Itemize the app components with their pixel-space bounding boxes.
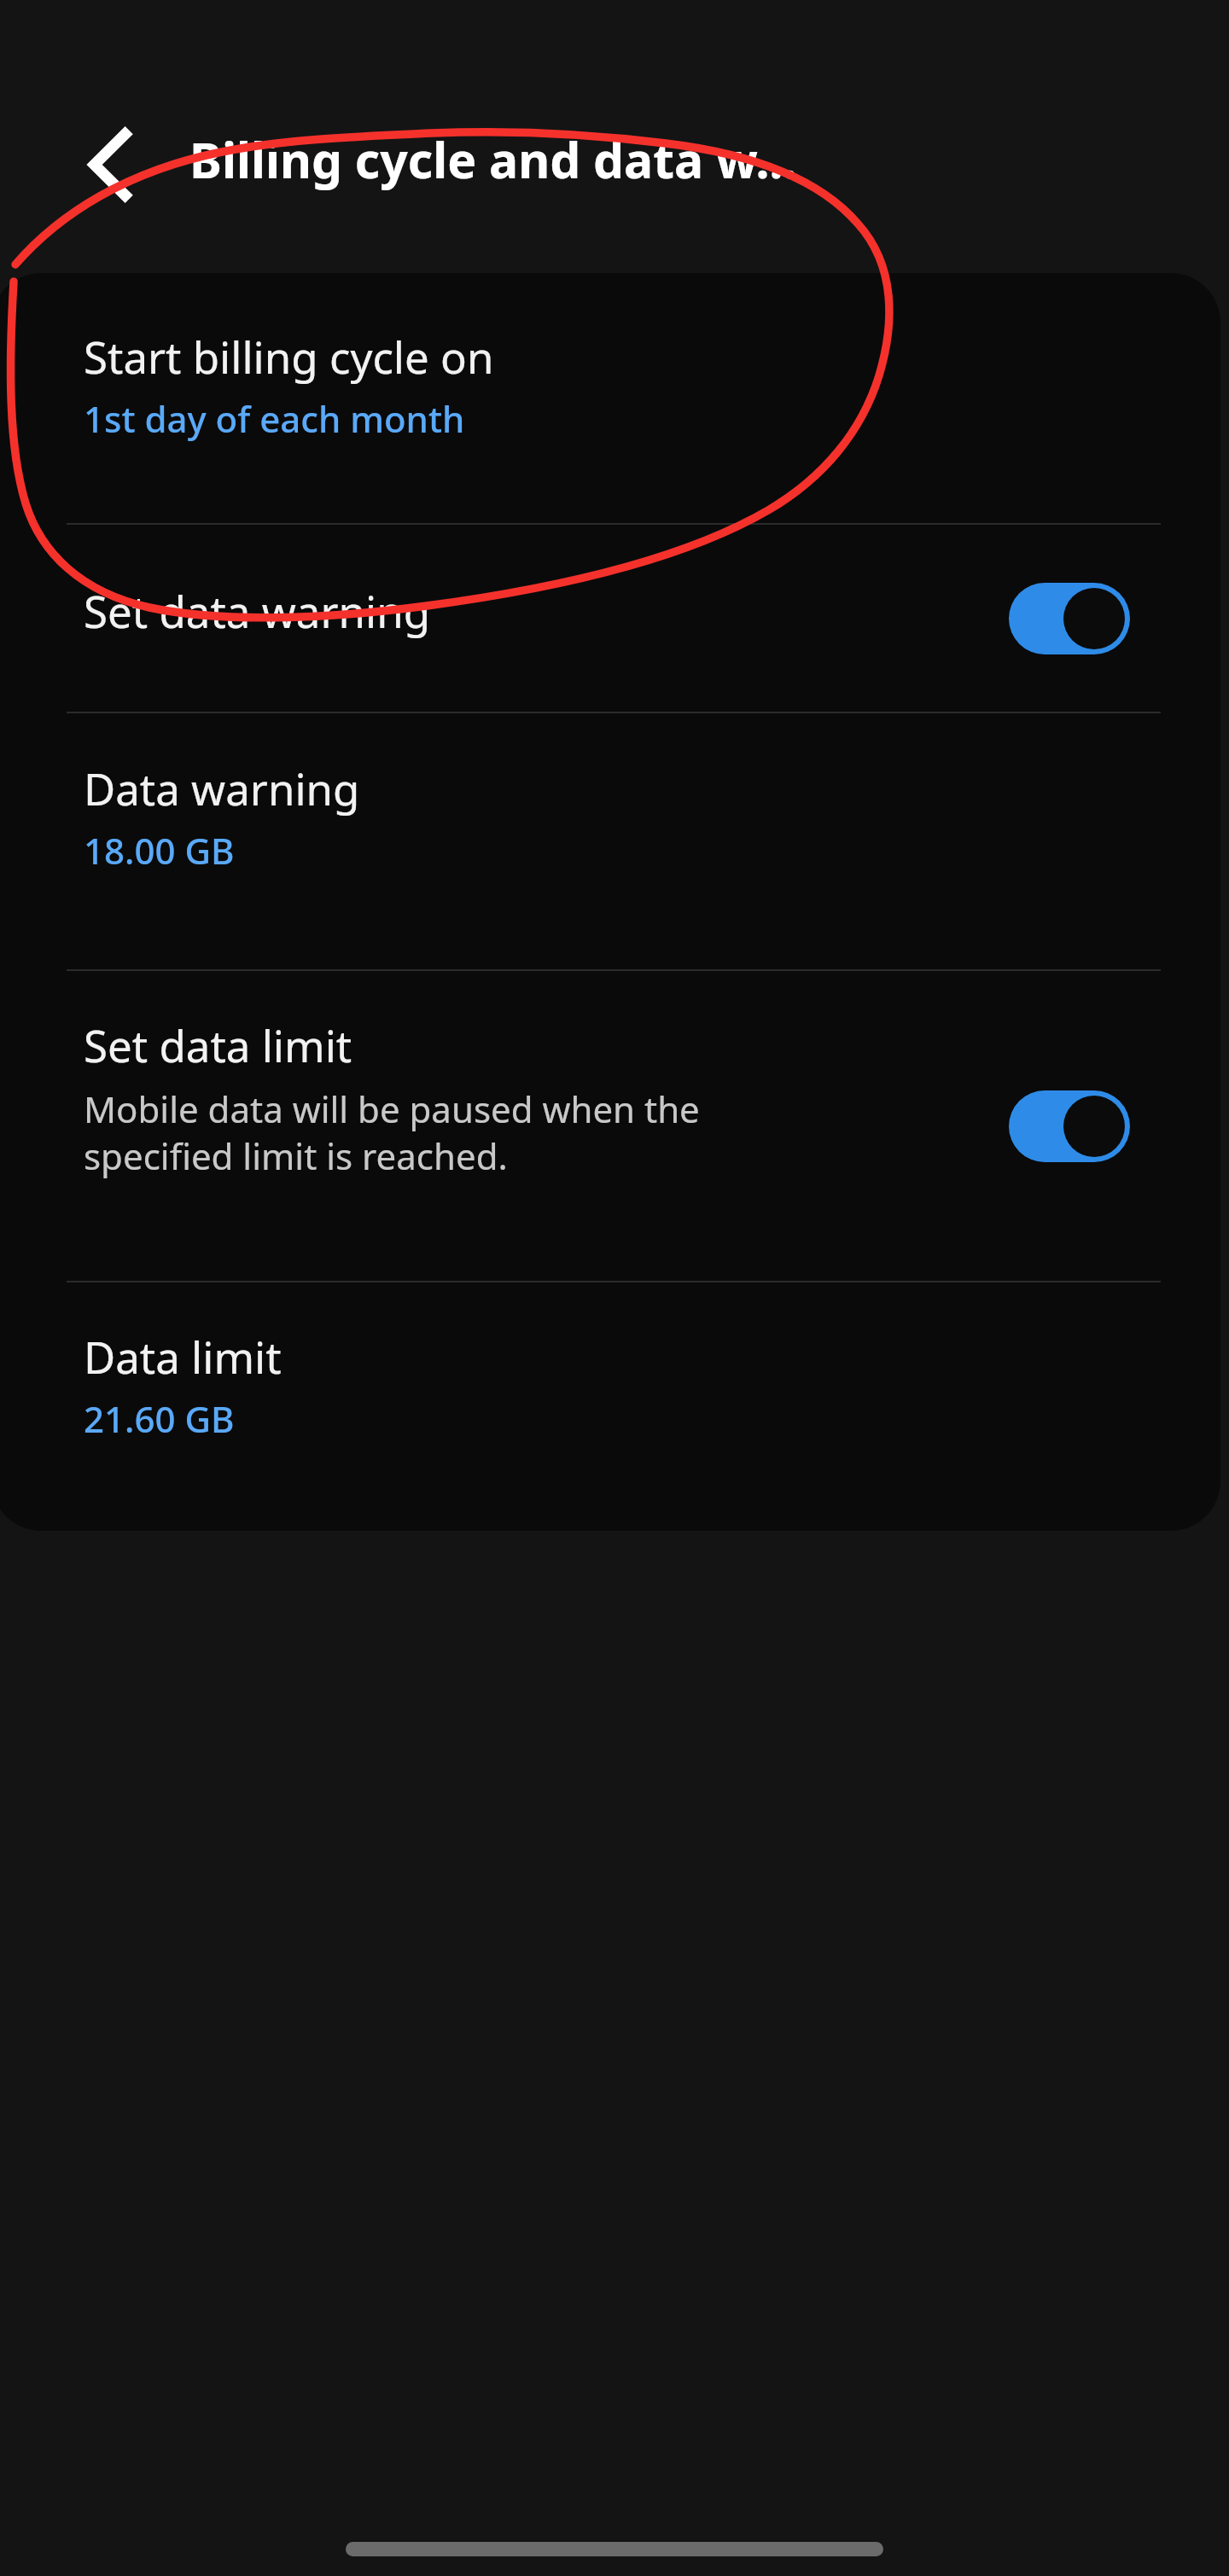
staticText: Billing cycle and data w...	[189, 126, 797, 193]
staticText: Data limit	[84, 1327, 282, 1386]
button[interactable]: Start billing cycle on	[0, 273, 1220, 523]
button[interactable]: Navigate up	[67, 119, 156, 209]
staticText: Start billing cycle on	[84, 327, 494, 386]
staticText: 1st day of each month	[84, 394, 465, 443]
button[interactable]: Set data warning toggle, on	[1009, 583, 1130, 654]
staticText: Mobile data will be paused when the spec…	[84, 1084, 700, 1180]
staticText: Set data limit	[84, 1015, 352, 1074]
button[interactable]: Set data warning	[0, 525, 1220, 712]
button[interactable]: Data limit	[0, 1282, 1220, 1531]
button[interactable]: Data warning	[0, 713, 1220, 969]
staticText: 18.00 GB	[84, 826, 235, 875]
staticText: 21.60 GB	[84, 1394, 235, 1443]
button[interactable]: Set data limit	[0, 971, 1220, 1281]
button[interactable]: Set data limit toggle, on	[1009, 1090, 1130, 1162]
staticText: Set data warning	[84, 581, 431, 640]
staticText: Data warning	[84, 759, 360, 817]
